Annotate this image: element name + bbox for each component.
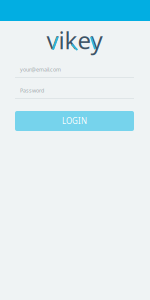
staticText: vikey	[46, 24, 102, 56]
button[interactable]: LOGIN	[15, 111, 134, 131]
staticText: your@email.com	[20, 66, 61, 73]
staticText: Password	[20, 87, 44, 94]
staticText: LOGIN	[62, 116, 87, 126]
